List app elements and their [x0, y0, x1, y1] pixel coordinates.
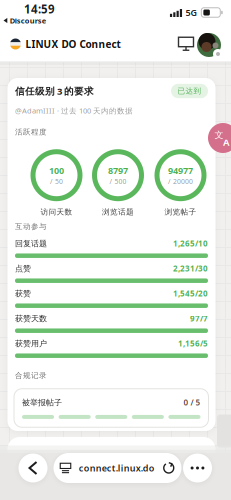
staticText: 97/7	[190, 313, 208, 324]
staticText: 点赞	[15, 263, 31, 274]
staticText: Discourse	[10, 15, 46, 26]
staticText: 获赞用户	[15, 338, 47, 349]
staticText: 14:59	[24, 1, 55, 17]
staticText: 被举报帖子	[22, 397, 62, 408]
staticText: 合规记录	[15, 371, 47, 380]
staticText: connect.linux.do	[79, 462, 155, 474]
staticText: / 20000	[168, 177, 193, 186]
staticText: 活跃程度	[15, 127, 47, 137]
staticText: 100	[49, 164, 64, 177]
staticText: 浏览帖子	[164, 207, 196, 217]
staticText: 已达到	[177, 86, 201, 96]
staticText: 互动参与	[15, 222, 47, 231]
staticText: 8797	[108, 164, 128, 177]
staticText: 回复话题	[15, 238, 47, 249]
button[interactable]: connect.linux.do	[53, 453, 181, 483]
staticText: 5G	[185, 6, 197, 19]
button[interactable]	[183, 453, 212, 482]
button[interactable]	[178, 37, 193, 51]
staticText: @AdamIIII · 过去 100 天内的数据	[15, 105, 133, 116]
staticText: 1,545/20	[173, 288, 208, 299]
staticText: 访问天数	[40, 207, 72, 217]
staticText: 信任级别 3 的要求	[15, 84, 94, 97]
staticText: 2,231/30	[173, 263, 208, 274]
button[interactable]: 已达到	[171, 84, 208, 98]
staticText: 获赞天数	[15, 313, 47, 324]
staticText: / 50	[50, 177, 63, 186]
button[interactable]: 文	[208, 123, 231, 153]
staticText: A	[223, 135, 230, 148]
staticText: / 500	[109, 177, 126, 186]
staticText: 浏览话题	[102, 207, 134, 217]
staticText: 获赞	[15, 288, 31, 299]
staticText: 94977	[168, 164, 193, 177]
button[interactable]	[18, 453, 47, 482]
staticText: 1,265/10	[173, 238, 208, 249]
staticText: 1,156/5	[178, 338, 208, 349]
button[interactable]	[197, 33, 221, 57]
staticText: 0 / 5	[183, 397, 200, 408]
button[interactable]: LINUX DO Connect	[0, 37, 165, 51]
staticText: 文	[214, 129, 223, 141]
staticText: LINUX DO Connect	[25, 37, 120, 51]
